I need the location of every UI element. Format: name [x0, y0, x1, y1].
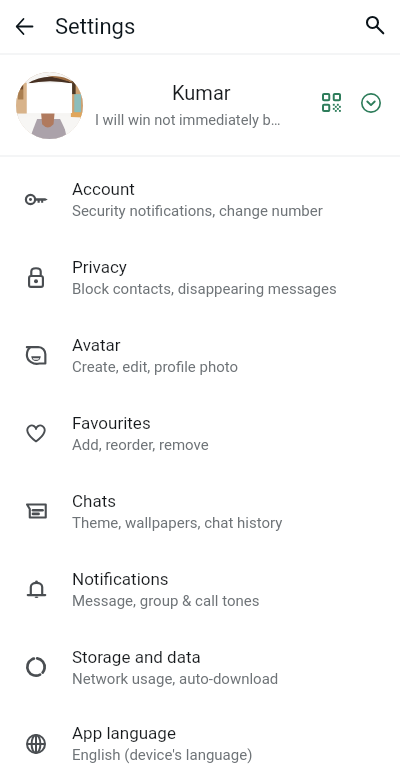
button[interactable]: Storage and data	[0, 628, 400, 706]
staticText: English (device's language)	[72, 746, 253, 764]
button[interactable]: Favourites	[0, 394, 400, 472]
staticText: Message, group & call tones	[72, 592, 260, 610]
button[interactable]: Notifications	[0, 550, 400, 628]
button[interactable]: Search	[355, 5, 395, 45]
button[interactable]: Account	[0, 160, 400, 238]
staticText: Add, reorder, remove	[72, 436, 209, 454]
staticText: Chats	[72, 491, 117, 511]
button[interactable]: QR code	[311, 82, 351, 122]
staticText: Settings	[55, 14, 136, 40]
staticText: Security notifications, change number	[72, 202, 323, 220]
button[interactable]: Chats	[0, 472, 400, 550]
staticText: Network usage, auto-download	[72, 670, 279, 688]
staticText: Notifications	[72, 569, 169, 589]
staticText: Theme, wallpapers, chat history	[72, 514, 283, 532]
button[interactable]: Avatar	[0, 316, 400, 394]
staticText: Create, edit, profile photo	[72, 358, 239, 376]
staticText: Privacy	[72, 257, 127, 277]
staticText: Account	[72, 179, 135, 199]
button[interactable]: Back	[6, 8, 42, 44]
staticText: I will win not immediately b…	[95, 111, 281, 128]
staticText: Avatar	[72, 335, 121, 355]
staticText: Storage and data	[72, 647, 201, 667]
staticText: Favourites	[72, 413, 151, 433]
button[interactable]: Privacy	[0, 238, 400, 316]
button[interactable]: Expand profile	[351, 83, 391, 123]
button[interactable]: App language	[0, 706, 400, 781]
staticText: App language	[72, 723, 176, 743]
button[interactable]: Kumar	[0, 55, 400, 155]
staticText: Kumar	[172, 81, 231, 104]
staticText: Block contacts, disappearing messages	[72, 280, 337, 298]
